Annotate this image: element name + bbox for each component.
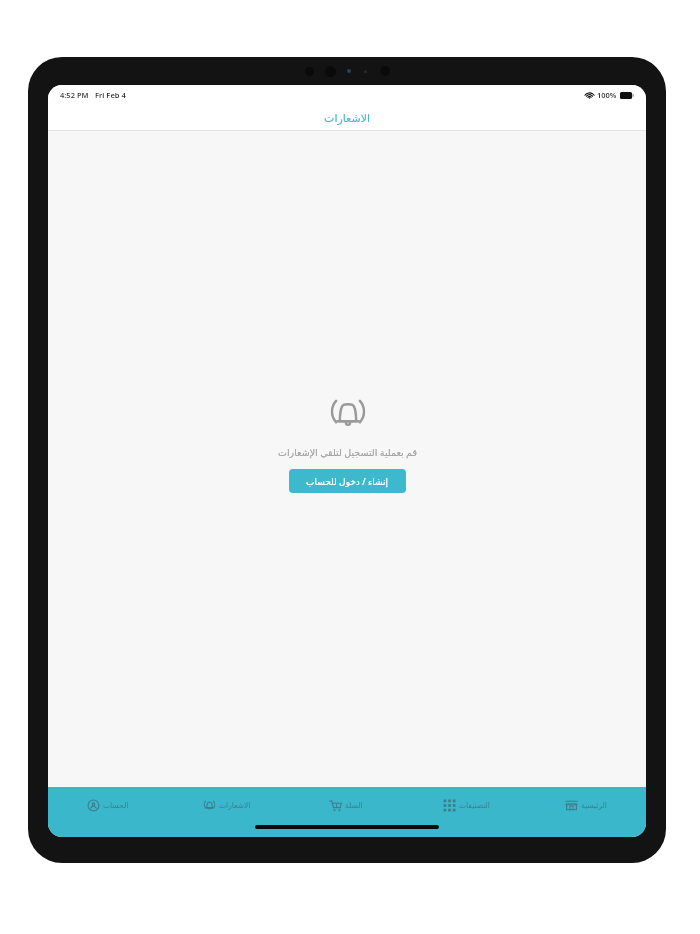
staticText: الاشعارات <box>219 801 251 810</box>
staticText: إنشاء / دخول للحساب <box>306 475 389 487</box>
staticText: الرئيسية <box>581 801 607 810</box>
button[interactable]: الاشعارات <box>167 787 286 823</box>
staticText: التصنيفات <box>459 801 490 810</box>
button[interactable]: الحساب <box>48 787 167 823</box>
staticText: Fri Feb 4 <box>95 90 126 100</box>
button[interactable]: السلة <box>286 787 406 823</box>
staticText: 4:52 PM <box>60 90 89 100</box>
staticText: الاشعارات <box>324 112 370 125</box>
staticText: قم بعملية التسجيل لتلقي الإشعارات <box>278 446 417 459</box>
button[interactable]: التصنيفات <box>406 787 526 823</box>
staticText: 100% <box>597 90 617 100</box>
staticText: الحساب <box>103 801 129 810</box>
button[interactable]: إنشاء / دخول للحساب <box>289 469 406 493</box>
button[interactable]: الرئيسية <box>526 787 646 823</box>
staticText: السلة <box>345 801 363 810</box>
